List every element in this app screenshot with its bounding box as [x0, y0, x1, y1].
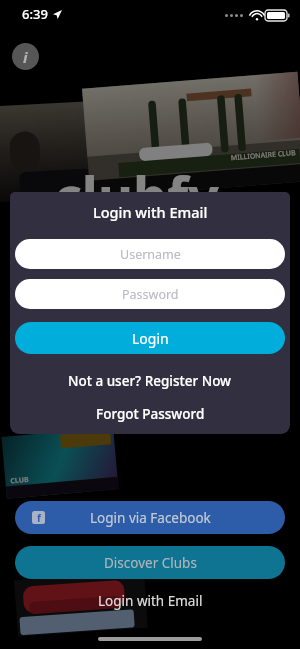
staticText: CLUB — [10, 475, 30, 486]
button[interactable]: Login with Email — [15, 588, 285, 614]
button[interactable]: Discover Clubs — [15, 546, 285, 579]
staticText: f — [37, 511, 41, 524]
button[interactable]: Login — [15, 322, 285, 354]
button[interactable]: Forgot Password — [10, 403, 290, 425]
staticText: MILLIONAIRE CLUB — [230, 148, 296, 163]
button[interactable]: Information — [12, 43, 39, 70]
staticText: Login with Email — [93, 202, 208, 222]
button[interactable]: Login via Facebook — [15, 501, 285, 534]
staticText: Password — [122, 286, 179, 303]
staticText: Login — [132, 329, 169, 348]
staticText: Login via Facebook — [90, 509, 211, 527]
staticText: Discover Clubs — [104, 554, 197, 572]
staticText: clubfy — [54, 158, 219, 232]
staticText: Username — [120, 246, 181, 263]
staticText: Login with Email — [98, 592, 203, 610]
button[interactable]: Username — [15, 239, 285, 269]
staticText: Not a user? Register Now — [68, 372, 232, 390]
staticText: 6:39 — [22, 5, 48, 23]
button[interactable]: Not a user? Register Now — [10, 370, 290, 392]
button[interactable]: Password — [15, 279, 285, 309]
staticText: i — [23, 47, 28, 67]
staticText: Forgot Password — [96, 405, 205, 423]
